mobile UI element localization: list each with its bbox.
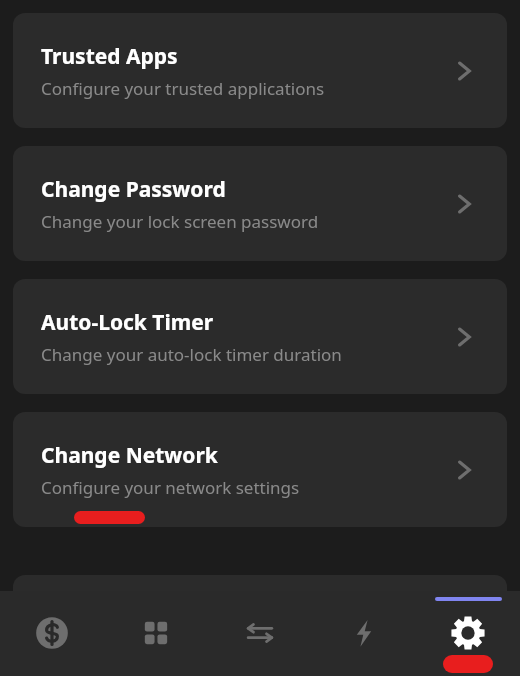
button[interactable]: Apps bbox=[104, 591, 208, 676]
button[interactable]: Swap bbox=[208, 591, 312, 676]
staticText: Configure your trusted applications bbox=[41, 77, 325, 100]
staticText: Change your auto-lock timer duration bbox=[41, 343, 342, 366]
staticText: Auto-Lock Timer bbox=[41, 308, 214, 337]
button[interactable]: Settings bbox=[416, 591, 520, 676]
staticText: Trusted Apps bbox=[41, 42, 178, 71]
staticText: Change Network bbox=[41, 441, 218, 470]
button[interactable]: Trusted Apps bbox=[13, 13, 507, 128]
button[interactable]: Change Password bbox=[13, 146, 507, 261]
button[interactable]: Auto-Lock Timer bbox=[13, 279, 507, 394]
staticText: Configure your network settings bbox=[41, 476, 300, 499]
button[interactable] bbox=[13, 575, 507, 676]
staticText: Change your lock screen password bbox=[41, 210, 319, 233]
button[interactable]: Wallet bbox=[0, 591, 104, 676]
button[interactable]: Change Network bbox=[13, 412, 507, 527]
staticText: Change Password bbox=[41, 175, 226, 204]
button[interactable]: Activity bbox=[312, 591, 416, 676]
